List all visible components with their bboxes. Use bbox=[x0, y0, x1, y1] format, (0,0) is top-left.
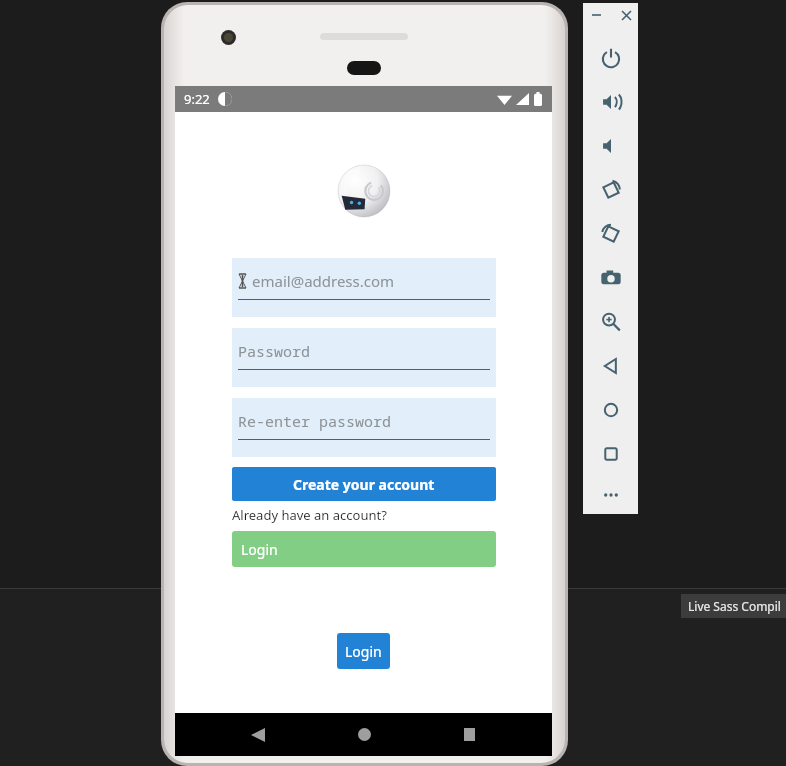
button[interactable]: Login bbox=[232, 531, 496, 567]
button[interactable]: Power bbox=[583, 36, 638, 80]
staticText: email@address.com bbox=[252, 271, 395, 291]
button[interactable]: Back bbox=[583, 344, 638, 388]
button[interactable]: Create your account bbox=[232, 467, 496, 501]
staticText: Login bbox=[241, 540, 278, 559]
button[interactable]: Rotate left bbox=[583, 168, 638, 212]
button[interactable]: Login bbox=[337, 633, 390, 669]
staticText: Create your account bbox=[293, 475, 435, 494]
button[interactable]: Home bbox=[583, 388, 638, 432]
staticText: 9:22 bbox=[184, 90, 210, 108]
button[interactable]: Recent apps bbox=[447, 713, 491, 756]
button[interactable]: Volume down bbox=[583, 124, 638, 168]
button[interactable]: Re-enter password bbox=[232, 398, 496, 457]
button[interactable]: Minimize bbox=[587, 6, 605, 24]
button[interactable]: Back bbox=[236, 713, 280, 756]
staticText: Re-enter password bbox=[238, 411, 392, 431]
button[interactable]: email@address.com bbox=[232, 258, 496, 317]
staticText: Live Sass Compil bbox=[688, 598, 781, 614]
staticText: Login bbox=[345, 642, 382, 661]
button[interactable]: Close bbox=[617, 6, 635, 24]
button[interactable]: Zoom bbox=[583, 300, 638, 344]
button[interactable]: Password bbox=[232, 328, 496, 387]
button[interactable]: More bbox=[583, 476, 638, 514]
staticText: Password bbox=[238, 341, 311, 361]
button[interactable]: Home bbox=[342, 713, 386, 756]
staticText: Already have an account? bbox=[232, 506, 387, 524]
button[interactable]: Rotate right bbox=[583, 212, 638, 256]
button[interactable]: Overview bbox=[583, 432, 638, 476]
button[interactable]: Volume up bbox=[583, 80, 638, 124]
button[interactable]: Live Sass Compil bbox=[681, 594, 786, 618]
button[interactable]: Take screenshot bbox=[583, 256, 638, 300]
